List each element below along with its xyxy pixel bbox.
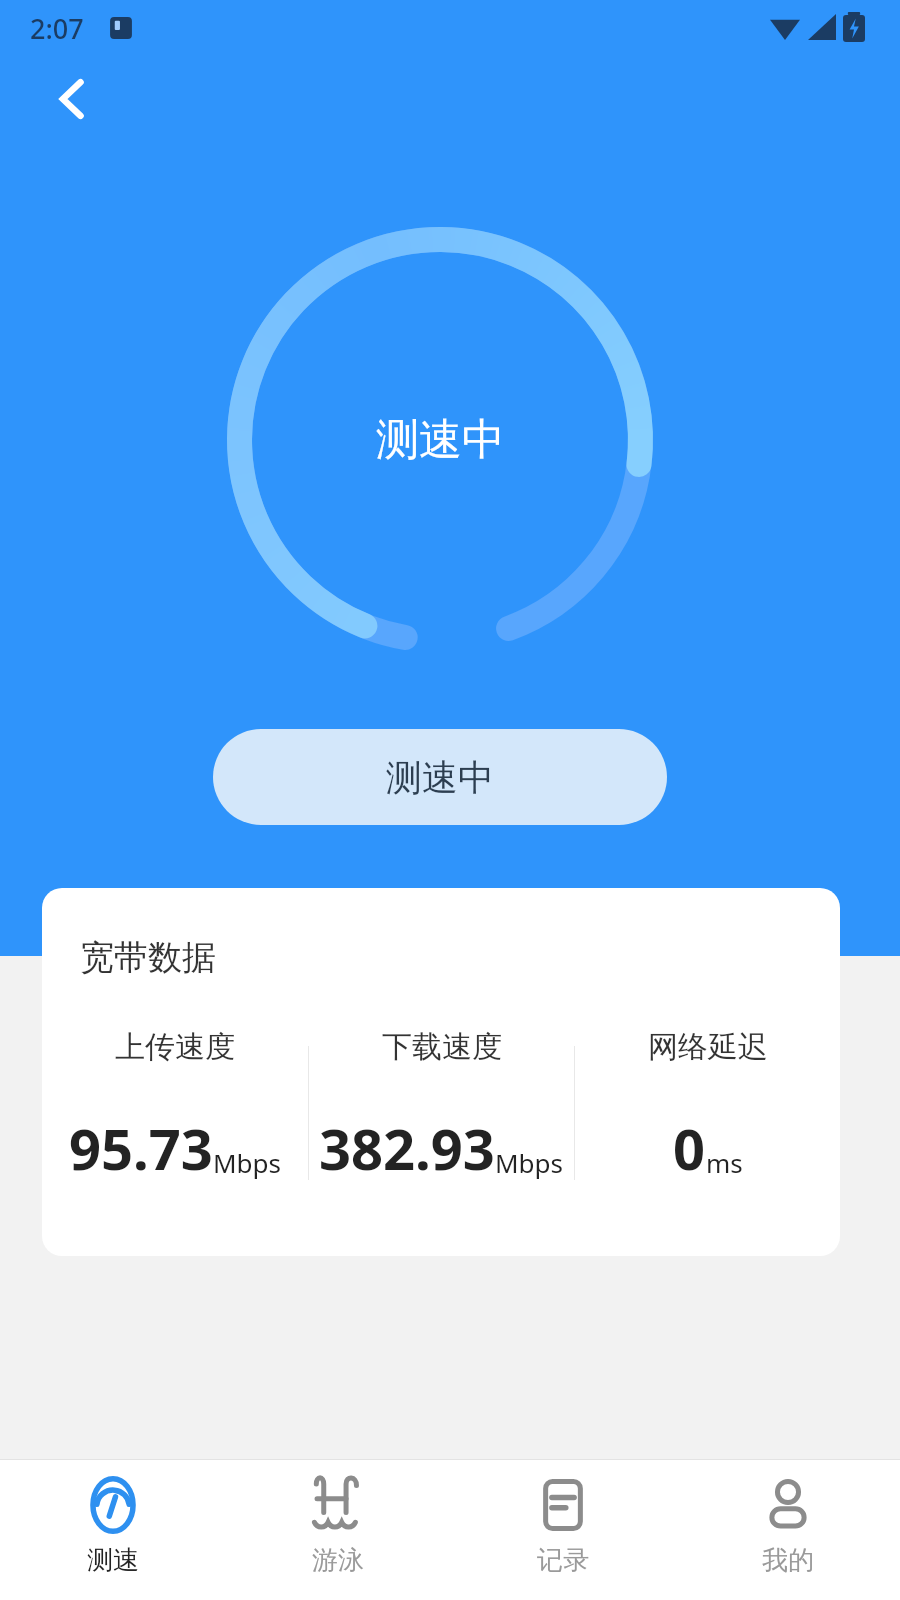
staticText: 网络延迟 — [648, 1028, 768, 1066]
staticText: 上传速度 — [115, 1028, 235, 1066]
staticText: 测速 — [87, 1544, 139, 1577]
staticText: Mbps — [213, 1145, 282, 1180]
button[interactable]: 测速 — [0, 1460, 225, 1577]
staticText: 我的 — [762, 1544, 814, 1577]
button[interactable]: 游泳 — [225, 1460, 450, 1577]
staticText: 测速中 — [376, 413, 505, 467]
staticText: 宽带数据 — [80, 936, 216, 979]
staticText: 2:07 — [30, 10, 84, 47]
button[interactable]: 我的 — [675, 1460, 900, 1577]
staticText: 382.93 — [319, 1110, 495, 1186]
staticText: 记录 — [537, 1544, 589, 1577]
staticText: Mbps — [495, 1145, 564, 1180]
staticText: ms — [706, 1145, 743, 1180]
staticText: 95.73 — [69, 1110, 213, 1186]
button[interactable]: 记录 — [450, 1460, 675, 1577]
staticText: 游泳 — [312, 1544, 364, 1577]
staticText: 0 — [673, 1110, 706, 1186]
button[interactable]: 测速中 — [213, 729, 667, 825]
staticText: 测速中 — [386, 755, 494, 800]
staticText: 下载速度 — [382, 1028, 502, 1066]
button[interactable]: Back — [36, 62, 110, 136]
